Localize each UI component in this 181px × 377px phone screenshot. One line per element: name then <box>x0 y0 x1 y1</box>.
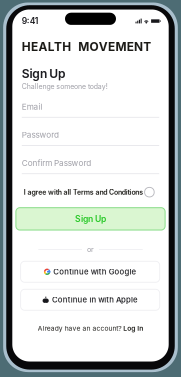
staticText: Confirm Password <box>22 158 91 168</box>
staticText: or <box>87 245 94 254</box>
staticText: Sign Up <box>22 66 65 81</box>
button[interactable]: Continue with Google <box>21 261 160 282</box>
staticText: Continue in with Apple <box>52 295 138 304</box>
button[interactable]: Continue in with Apple <box>21 289 160 310</box>
staticText: 9:41 <box>22 16 39 26</box>
staticText: I agree with all Terms and Conditions <box>24 188 143 196</box>
staticText: HEALTH MOVEMENT <box>22 39 151 54</box>
staticText: Email <box>22 102 42 112</box>
staticText: Challenge someone today! <box>22 82 108 91</box>
button[interactable]: Sign Up <box>16 208 165 230</box>
staticText: Sign Up <box>75 214 106 224</box>
button[interactable]: Already have an account? Log In <box>12 322 169 334</box>
staticText: Password <box>22 130 59 140</box>
staticText: Continue with Google <box>53 267 136 276</box>
staticText: Already have an account? Log In <box>38 324 143 332</box>
button[interactable]: I agree with all Terms and Conditions <box>12 186 169 199</box>
